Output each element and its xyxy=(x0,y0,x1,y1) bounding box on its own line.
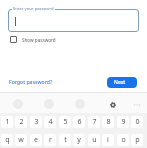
button[interactable]: Suggestion xyxy=(13,99,23,109)
button[interactable]: 9 xyxy=(117,116,129,128)
staticText: i xyxy=(107,135,109,145)
staticText: o xyxy=(121,135,126,145)
button[interactable]: 6 xyxy=(73,116,85,128)
button[interactable]: 8 xyxy=(102,116,114,128)
staticText: 7 xyxy=(92,117,97,127)
staticText: 5 xyxy=(63,117,68,127)
button[interactable]: 3 xyxy=(30,116,42,128)
staticText: Show password xyxy=(22,37,56,43)
button[interactable]: u xyxy=(88,134,100,146)
staticText: 2 xyxy=(19,117,24,127)
button[interactable]: o xyxy=(117,134,129,146)
button[interactable]: e xyxy=(30,134,42,146)
staticText: e xyxy=(34,135,38,145)
staticText: 6 xyxy=(77,117,82,127)
button[interactable]: w xyxy=(15,134,27,146)
staticText: t xyxy=(64,135,67,145)
staticText: 9 xyxy=(121,117,126,127)
button[interactable]: 2 xyxy=(15,116,27,128)
staticText: Forgot password? xyxy=(9,79,53,86)
button[interactable]: t xyxy=(59,134,71,146)
button[interactable]: 0 xyxy=(131,116,143,128)
staticText: 8 xyxy=(106,117,111,127)
button[interactable]: 4 xyxy=(44,116,56,128)
staticText: 4 xyxy=(48,117,53,127)
staticText: Enter your password xyxy=(13,6,54,12)
button[interactable]: 1 xyxy=(1,116,13,128)
staticText: 3 xyxy=(34,117,39,127)
button[interactable] xyxy=(8,9,139,32)
button[interactable]: Show password xyxy=(10,36,56,43)
button[interactable]: q xyxy=(1,134,13,146)
staticText: u xyxy=(92,135,97,145)
button[interactable]: 5 xyxy=(59,116,71,128)
staticText: w xyxy=(18,135,24,145)
button[interactable]: y xyxy=(73,134,85,146)
button[interactable]: p xyxy=(131,134,143,146)
button[interactable]: 7 xyxy=(88,116,100,128)
button[interactable]: Forgot password? xyxy=(9,79,53,86)
button[interactable]: r xyxy=(44,134,56,146)
button[interactable]: Suggestion xyxy=(75,99,85,109)
staticText: r xyxy=(49,135,52,145)
staticText: y xyxy=(77,135,81,145)
staticText: q xyxy=(5,135,10,145)
button[interactable]: Keyboard settings xyxy=(106,98,120,112)
button[interactable]: i xyxy=(102,134,114,146)
button[interactable]: More options xyxy=(130,98,144,112)
staticText: 1 xyxy=(5,117,10,127)
button[interactable]: Suggestion xyxy=(44,99,54,109)
staticText: p xyxy=(135,135,140,145)
staticText: Next xyxy=(114,79,126,86)
button[interactable]: Next xyxy=(107,77,137,88)
staticText: 0 xyxy=(135,117,140,127)
